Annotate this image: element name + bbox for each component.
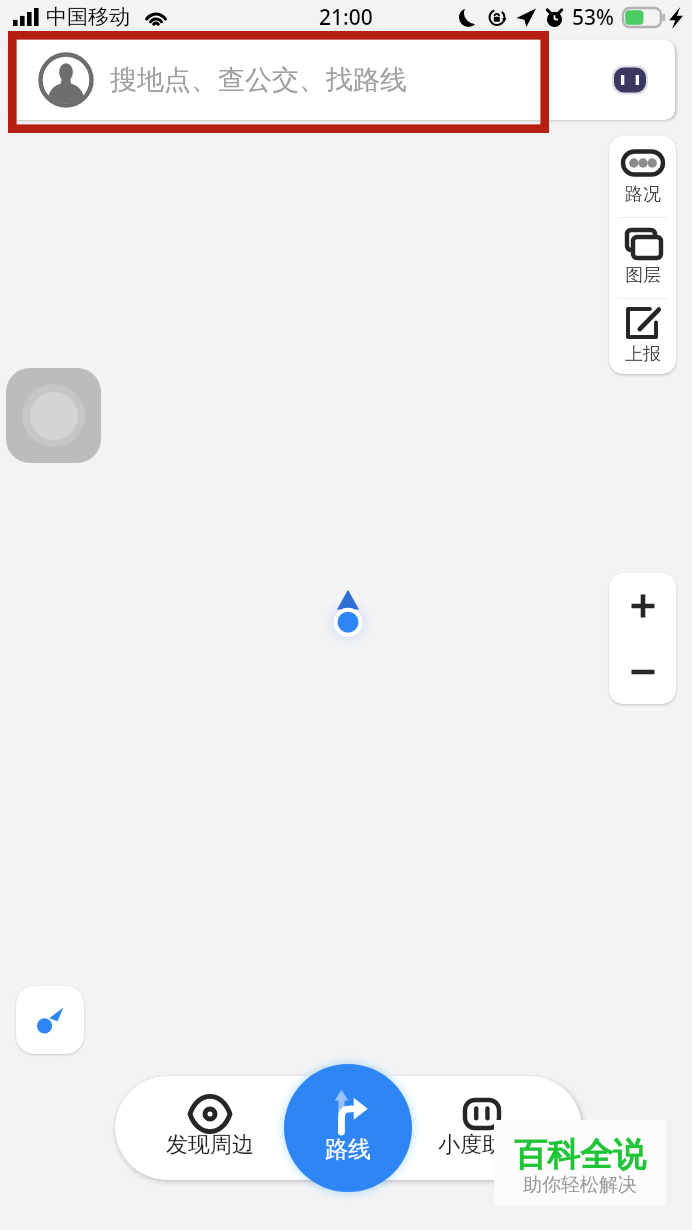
staticText: 21:00 — [319, 3, 373, 32]
button[interactable]: 小度助手 — [402, 1076, 562, 1180]
staticText: 上报 — [625, 343, 661, 366]
staticText: 中国移动 — [46, 4, 130, 30]
staticText: 路线 — [325, 1135, 371, 1164]
staticText: 发现周边 — [166, 1131, 254, 1159]
button[interactable]: Voice assistant — [607, 57, 653, 103]
staticText: 小度助手 — [438, 1131, 526, 1159]
staticText: 图层 — [625, 264, 661, 287]
button[interactable]: 图层 — [609, 218, 676, 298]
button[interactable]: 路线 — [284, 1064, 412, 1192]
button[interactable]: Zoom out — [609, 639, 676, 704]
button[interactable]: 路况 — [609, 136, 676, 217]
button[interactable]: 搜地点、查公交、找路线 — [8, 40, 675, 120]
staticText: 53% — [572, 3, 614, 32]
staticText: 助你轻松解决 — [523, 1173, 637, 1197]
staticText: 百科全说 — [514, 1134, 646, 1176]
button[interactable]: Zoom in — [609, 573, 676, 639]
staticText: 路况 — [625, 183, 661, 206]
staticText: 搜地点、查公交、找路线 — [110, 63, 407, 97]
button[interactable]: 上报 — [609, 299, 676, 374]
button[interactable]: 发现周边 — [130, 1076, 290, 1180]
button[interactable]: My location — [16, 986, 84, 1054]
